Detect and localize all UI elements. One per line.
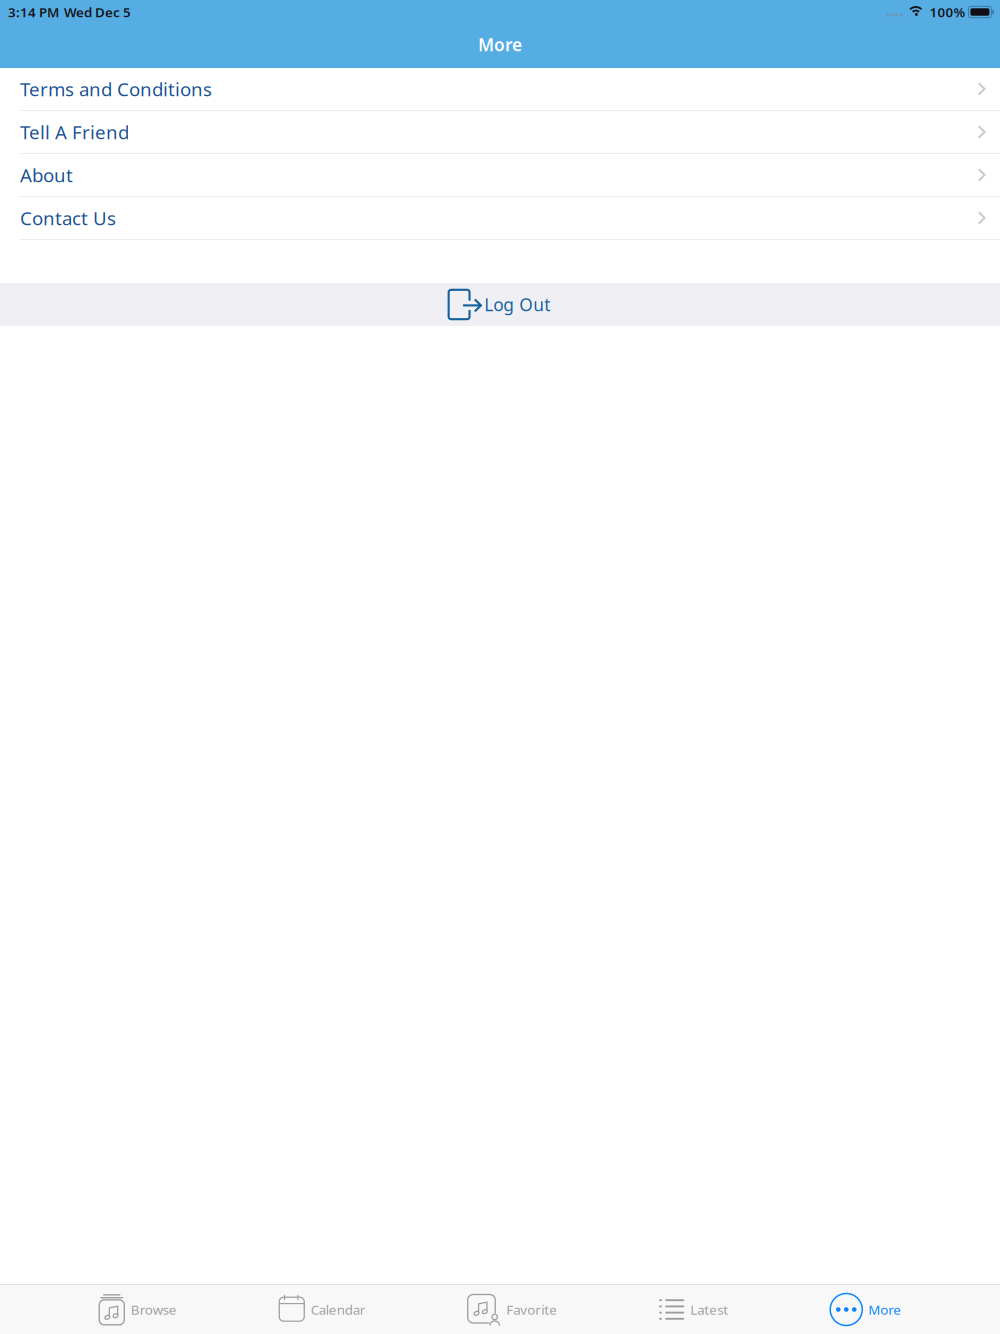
staticText: More (478, 33, 522, 56)
button[interactable]: About (0, 154, 1000, 197)
staticText: Terms and Conditions (20, 77, 212, 101)
staticText: Log Out (484, 293, 550, 316)
staticText: Tell A Friend (20, 120, 129, 144)
button[interactable]: Browse (99, 1285, 177, 1333)
staticText: 100% (929, 3, 965, 21)
staticText: Browse (131, 1301, 177, 1318)
button[interactable]: Contact Us (0, 197, 1000, 240)
staticText: Calendar (311, 1301, 366, 1318)
button[interactable]: Favorite (468, 1285, 557, 1333)
staticText: Favorite (506, 1301, 557, 1318)
staticText: About (20, 163, 73, 187)
button[interactable]: Latest (659, 1285, 728, 1333)
button[interactable]: Log Out (0, 283, 1000, 326)
staticText: More (868, 1301, 901, 1318)
staticText: Latest (690, 1301, 728, 1318)
staticText: 3:14 PM (8, 3, 59, 21)
staticText: Contact Us (20, 206, 116, 230)
button[interactable]: More (830, 1285, 901, 1333)
staticText: Wed Dec 5 (64, 3, 131, 21)
button[interactable]: Tell A Friend (0, 111, 1000, 154)
button[interactable]: Terms and Conditions (0, 68, 1000, 111)
button[interactable]: Calendar (279, 1285, 366, 1333)
